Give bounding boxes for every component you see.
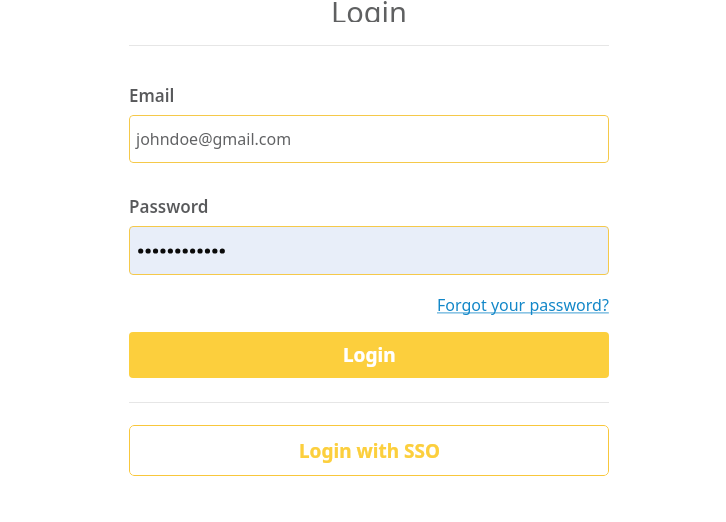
button[interactable]: johndoe@gmail.com (129, 115, 609, 163)
staticText: Email (129, 84, 175, 107)
staticText: Login (129, 0, 609, 22)
button[interactable]: Login with SSO (129, 425, 609, 476)
staticText: johndoe@gmail.com (136, 128, 292, 150)
button[interactable]: Login (129, 332, 609, 378)
other: Password hidden characters (137, 246, 226, 256)
button[interactable]: Forgot your password? (437, 294, 609, 316)
staticText: Password (129, 195, 209, 218)
staticText: Forgot your password? (437, 294, 609, 316)
button[interactable]: Password hidden characters (129, 226, 609, 275)
staticText: Login with SSO (299, 438, 440, 464)
staticText: Login (343, 342, 396, 368)
